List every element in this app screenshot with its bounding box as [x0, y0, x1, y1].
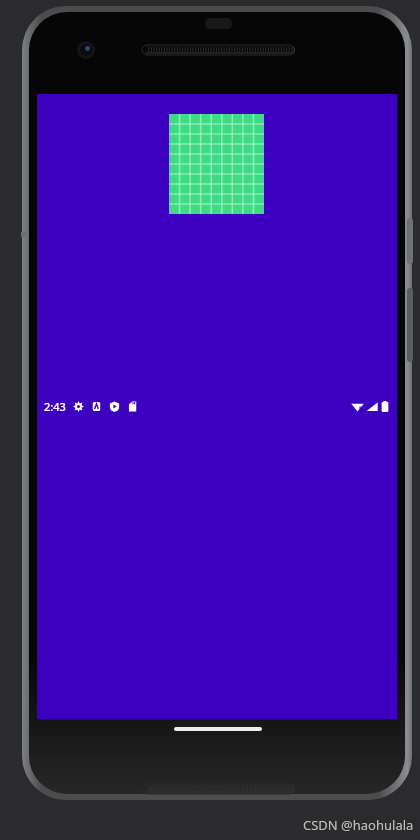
staticText: CSDN @haohulala	[303, 816, 414, 834]
staticText: 2:43	[44, 399, 66, 414]
button[interactable]: Green grid view	[169, 114, 264, 214]
